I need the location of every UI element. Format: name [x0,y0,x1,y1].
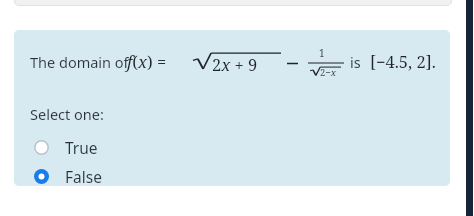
staticText: 2x + 9 [212,53,258,75]
staticText: 1 [319,46,325,60]
staticText: The domain of [30,52,129,72]
staticText: False [65,166,102,186]
staticText: 2−x [320,66,336,79]
button[interactable]: True [30,134,180,160]
staticText: [−4.5, 2]. [370,50,436,72]
staticText: f(x) = [127,50,171,72]
other: False [30,166,52,186]
staticText: True [65,137,98,158]
button[interactable]: False [30,166,180,186]
other: True [30,136,52,158]
staticText: is [350,52,361,72]
staticText: Select one: [30,104,104,124]
